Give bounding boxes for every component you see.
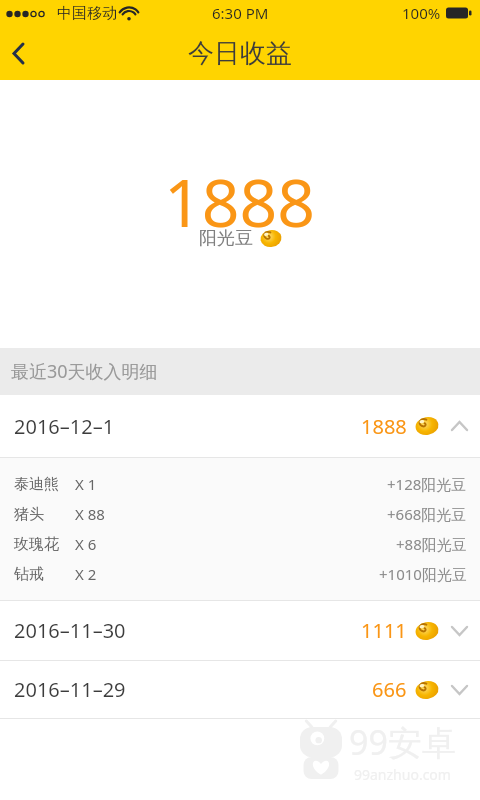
staticText: 钻戒 bbox=[14, 565, 44, 584]
staticText: 2016–12–1 bbox=[14, 413, 115, 440]
staticText: +128阳光豆 bbox=[387, 474, 467, 494]
staticText: 100% bbox=[402, 3, 441, 23]
staticText: +668阳光豆 bbox=[387, 504, 467, 524]
staticText: X 88 bbox=[75, 504, 105, 524]
staticText: X 6 bbox=[75, 534, 97, 554]
staticText: 1111 bbox=[361, 617, 407, 644]
staticText: 6:30 PM bbox=[212, 3, 269, 23]
staticText: 666 bbox=[372, 676, 407, 703]
staticText: 1888 bbox=[361, 413, 407, 440]
staticText: 猪头 bbox=[14, 505, 44, 524]
button[interactable]: 2016–12–1 bbox=[0, 395, 480, 457]
staticText: 玫瑰花 bbox=[14, 535, 59, 554]
staticText: +1010阳光豆 bbox=[379, 564, 467, 584]
staticText: 今日收益 bbox=[188, 37, 292, 70]
staticText: +88阳光豆 bbox=[396, 534, 467, 554]
staticText: 中国移动 bbox=[57, 4, 117, 23]
staticText: X 2 bbox=[75, 564, 97, 584]
staticText: 泰迪熊 bbox=[14, 475, 59, 494]
staticText: 最近30天收入明细 bbox=[11, 359, 158, 384]
staticText: 99安卓 bbox=[349, 719, 456, 765]
staticText: 2016–11–29 bbox=[14, 676, 126, 703]
button[interactable]: 2016–11–30 bbox=[0, 601, 480, 660]
staticText: X 1 bbox=[75, 474, 97, 494]
staticText: 99anzhuo.com bbox=[354, 765, 451, 780]
button[interactable]: 2016–11–29 bbox=[0, 661, 480, 718]
button[interactable] bbox=[12, 38, 42, 68]
staticText: 阳光豆 bbox=[199, 227, 253, 250]
staticText: 1888 bbox=[164, 156, 316, 246]
staticText: 2016–11–30 bbox=[14, 617, 126, 644]
